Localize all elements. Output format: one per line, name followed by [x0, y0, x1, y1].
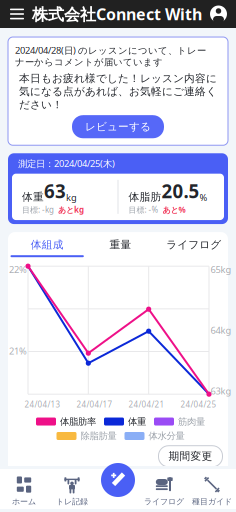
button[interactable]: 体脂肪率	[36, 416, 96, 427]
button[interactable]: トレ記録	[48, 474, 96, 508]
staticText: 期間変更	[168, 450, 212, 463]
staticText: 目標: -kg	[22, 204, 54, 215]
staticText: 20.5	[161, 179, 199, 203]
staticText: ライフログ	[166, 238, 221, 251]
button[interactable]: レビューする	[72, 115, 164, 138]
staticText: 64kg	[210, 324, 231, 336]
button[interactable]: 種目ガイド	[188, 474, 236, 508]
staticText: 体水分量	[148, 430, 184, 442]
staticText: 体組成	[31, 238, 64, 251]
staticText: 筋肉量	[178, 416, 205, 427]
button[interactable]: ライフログ	[140, 474, 188, 508]
button[interactable]: Menu	[0, 0, 32, 28]
staticText: 65kg	[210, 263, 231, 276]
staticText: 株式会社Connect With	[32, 3, 202, 25]
button[interactable]: ライフログ	[157, 238, 230, 257]
staticText: 体重	[128, 416, 146, 427]
button[interactable]: 除脂肪量	[56, 430, 116, 442]
staticText: あとkg	[58, 204, 84, 215]
staticText: 本日もお疲れ様でした！レッスン内容に気になる点があれば、お気軽にご連絡ください！	[19, 72, 217, 111]
staticText: トレ記録	[56, 497, 88, 506]
button[interactable]: Quick add	[101, 463, 135, 497]
staticText: kg	[66, 191, 77, 203]
button[interactable]: ホーム	[0, 474, 48, 508]
button[interactable]: 体組成	[10, 238, 84, 257]
staticText: 24/04/21	[128, 399, 164, 410]
staticText: 種目ガイド	[192, 497, 232, 506]
staticText: %	[199, 191, 207, 203]
staticText: 24/04/17	[76, 399, 112, 410]
staticText: 24/04/25	[180, 399, 216, 410]
staticText: 24/04/13	[24, 399, 60, 410]
button[interactable]: 重量	[84, 238, 157, 257]
staticText: 除脂肪量	[80, 430, 116, 442]
staticText: 22%	[9, 263, 27, 276]
staticText: 2024/04/28(日) のレッスンについて、トレーナーからコメントが届いてい…	[15, 44, 206, 68]
button[interactable]: 体重	[104, 416, 146, 427]
button[interactable]: 体水分量	[124, 430, 184, 442]
button[interactable]: 期間変更	[158, 446, 222, 467]
button[interactable]: Account	[210, 0, 236, 28]
staticText: あと%	[162, 204, 185, 215]
staticText: 21%	[9, 345, 27, 357]
button[interactable]: 筋肉量	[154, 416, 205, 427]
staticText: 測定日：2024/04/25(木)	[18, 157, 115, 170]
staticText: 63	[44, 179, 66, 203]
staticText: レビューする	[85, 120, 151, 133]
staticText: 重量	[109, 238, 131, 251]
staticText: 体脂肪	[128, 190, 161, 203]
staticText: 体脂肪率	[60, 416, 96, 427]
staticText: ホーム	[12, 497, 36, 506]
staticText: 目標: -%	[128, 204, 158, 215]
staticText: 体重	[22, 190, 44, 203]
staticText: ライフログ	[144, 497, 184, 506]
staticText: 63kg	[210, 385, 231, 397]
